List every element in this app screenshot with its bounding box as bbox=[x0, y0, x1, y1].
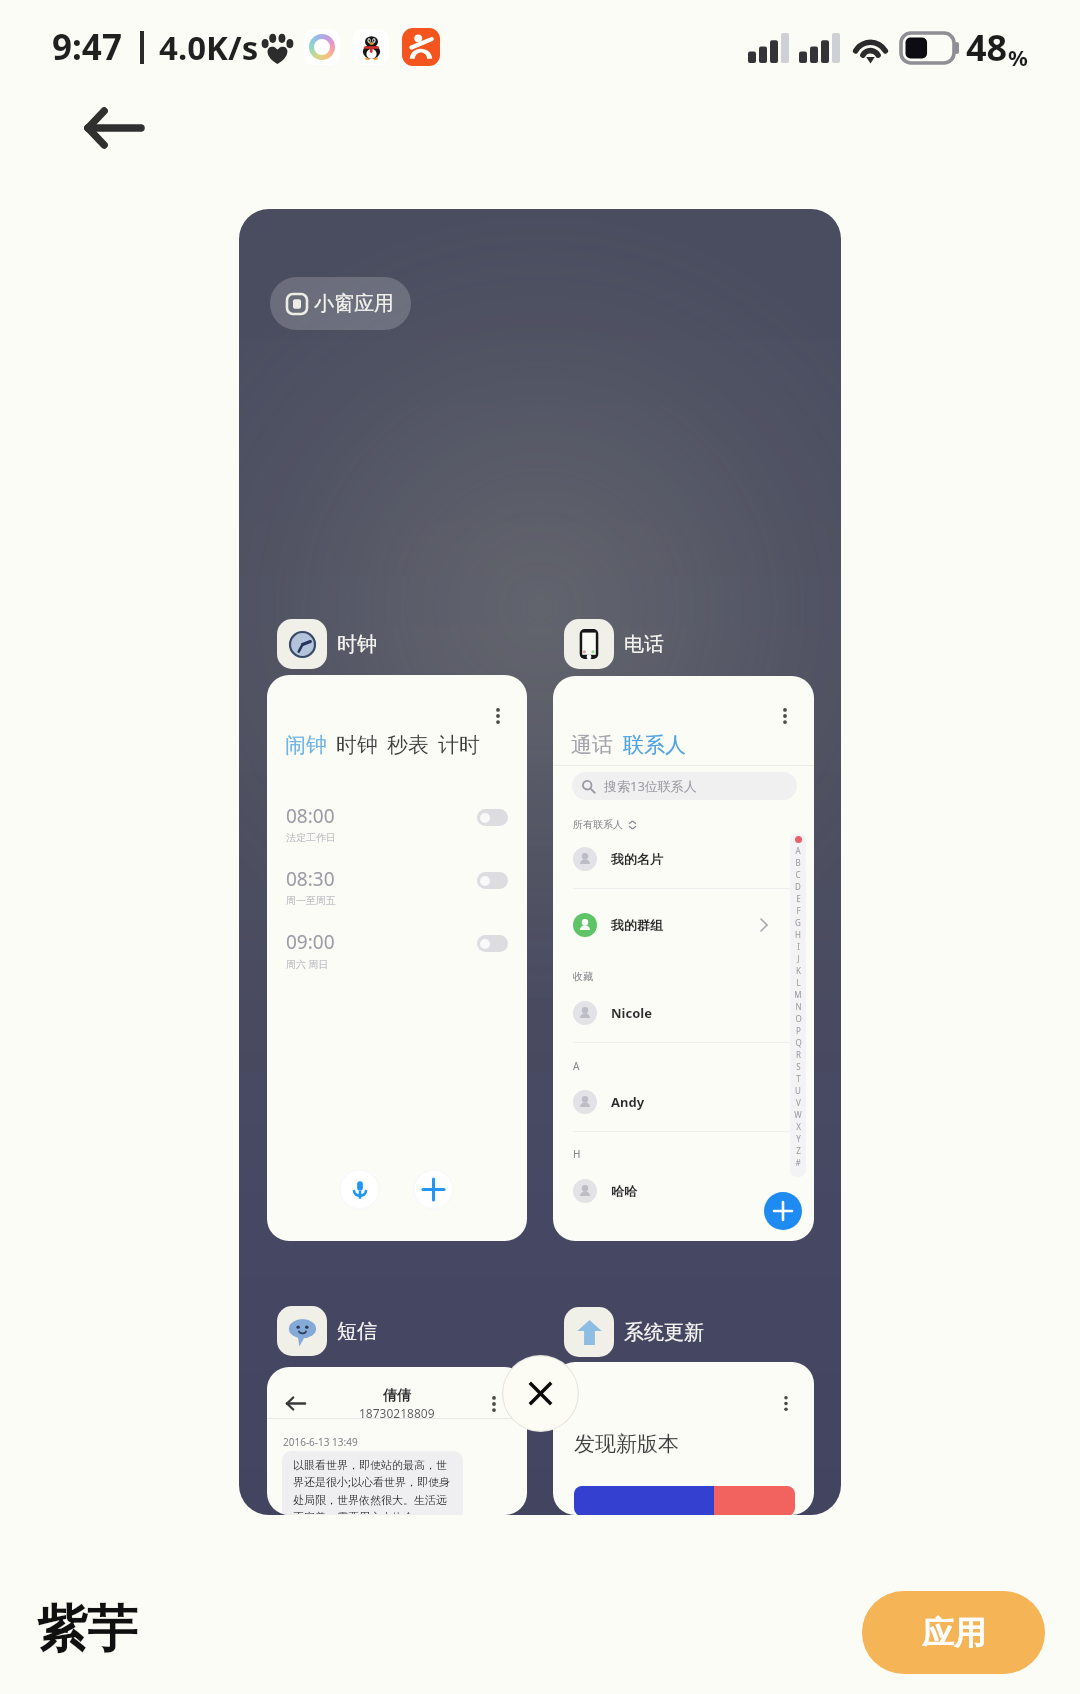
staticText: 以眼看世界，即使站的最高，世界还是很小;以心看世界，即使身处局限，世界依然很大。… bbox=[293, 1458, 452, 1514]
staticText: 电话 bbox=[624, 632, 664, 657]
staticText: J bbox=[797, 953, 800, 965]
button[interactable] bbox=[477, 935, 508, 952]
staticText: Nicole bbox=[611, 1004, 652, 1022]
staticText: 秒表 bbox=[387, 732, 429, 758]
staticText: A bbox=[573, 1059, 580, 1073]
staticText: 所有联系人 bbox=[573, 818, 623, 831]
staticText: 哈哈 bbox=[611, 1183, 637, 1199]
staticText: 小窗应用 bbox=[314, 291, 394, 316]
button[interactable] bbox=[477, 809, 508, 826]
staticText: 应用 bbox=[922, 1613, 986, 1653]
staticText: 倩倩 bbox=[383, 1387, 411, 1405]
staticText: T bbox=[796, 1073, 801, 1085]
staticText: U bbox=[795, 1085, 801, 1097]
button[interactable]: 09:00 bbox=[286, 929, 508, 979]
button[interactable]: 小窗应用 bbox=[270, 277, 411, 330]
staticText: 09:00 bbox=[286, 929, 335, 955]
staticText: 我的群组 bbox=[611, 917, 663, 933]
button[interactable]: 发现新版本 bbox=[553, 1362, 814, 1515]
button[interactable]: 电话 bbox=[564, 619, 664, 669]
staticText: 我的名片 bbox=[611, 851, 663, 867]
button[interactable]: 我的名片 bbox=[573, 846, 798, 872]
staticText: C bbox=[795, 869, 801, 881]
staticText: L bbox=[796, 977, 801, 989]
staticText: 时钟 bbox=[336, 732, 378, 758]
staticText: W bbox=[794, 1109, 802, 1121]
button[interactable]: Back bbox=[62, 76, 166, 180]
button[interactable]: 闹钟 bbox=[267, 675, 527, 1241]
button[interactable]: Add contact bbox=[764, 1192, 802, 1230]
staticText: 系统更新 bbox=[624, 1320, 704, 1345]
button[interactable]: Add alarm bbox=[413, 1169, 454, 1210]
staticText: 收藏 bbox=[573, 970, 593, 983]
staticText: 4.0K/s bbox=[159, 25, 259, 70]
staticText: 法定工作日 bbox=[286, 831, 336, 844]
staticText: N bbox=[795, 1001, 802, 1013]
button[interactable]: 08:30 bbox=[286, 866, 508, 916]
button[interactable]: 08:00 bbox=[286, 803, 508, 853]
button[interactable]: 倩倩 bbox=[267, 1367, 527, 1515]
button[interactable]: Nicole bbox=[573, 1000, 798, 1026]
button[interactable]: 通话 bbox=[553, 676, 814, 1241]
staticText: Andy bbox=[611, 1093, 645, 1111]
staticText: 发现新版本 bbox=[574, 1431, 679, 1457]
button[interactable]: Close bbox=[502, 1355, 579, 1432]
button[interactable]: Andy bbox=[573, 1089, 798, 1115]
staticText: H bbox=[795, 929, 801, 941]
button[interactable]: 哈哈 bbox=[573, 1178, 798, 1204]
staticText: 2016-6-13 13:49 bbox=[283, 1435, 358, 1449]
staticText: V bbox=[796, 1097, 801, 1109]
button[interactable]: 应用 bbox=[862, 1591, 1045, 1674]
staticText: 通话 bbox=[571, 732, 613, 758]
button[interactable]: Voice bbox=[339, 1169, 380, 1210]
staticText: 周六 周日 bbox=[286, 957, 329, 971]
button[interactable]: 我的群组 bbox=[573, 912, 798, 938]
staticText: 联系人 bbox=[623, 732, 686, 758]
staticText: 08:00 bbox=[286, 803, 335, 829]
staticText: S bbox=[796, 1061, 801, 1073]
staticText: Q bbox=[795, 1037, 802, 1049]
staticText: Y bbox=[796, 1133, 801, 1145]
staticText: # bbox=[795, 1157, 801, 1169]
staticText: 计时 bbox=[438, 732, 480, 758]
staticText: F bbox=[796, 905, 801, 917]
button[interactable]: 时钟 bbox=[277, 619, 377, 669]
staticText: P bbox=[796, 1025, 801, 1037]
staticText: 18730218809 bbox=[359, 1405, 435, 1421]
staticText: Z bbox=[796, 1145, 801, 1157]
staticText: 紫芋 bbox=[37, 1598, 137, 1661]
staticText: R bbox=[796, 1049, 801, 1061]
staticText: I bbox=[797, 941, 800, 953]
staticText: M bbox=[794, 989, 802, 1001]
staticText: 周一至周五 bbox=[286, 894, 336, 907]
button[interactable] bbox=[477, 872, 508, 889]
staticText: 短信 bbox=[337, 1319, 377, 1344]
staticText: 9:47 bbox=[52, 23, 122, 71]
staticText: G bbox=[795, 917, 801, 929]
staticText: D bbox=[795, 881, 801, 893]
staticText: O bbox=[795, 1013, 802, 1025]
staticText: H bbox=[573, 1147, 581, 1161]
button[interactable]: 系统更新 bbox=[564, 1307, 704, 1357]
staticText: A bbox=[795, 845, 801, 857]
staticText: 48 bbox=[966, 23, 1008, 72]
staticText: K bbox=[796, 965, 801, 977]
button[interactable]: 小窗应用 bbox=[239, 209, 841, 1515]
staticText: B bbox=[795, 857, 801, 869]
button[interactable]: 短信 bbox=[277, 1306, 377, 1356]
staticText: X bbox=[796, 1121, 801, 1133]
button[interactable]: 搜索13位联系人 bbox=[572, 772, 797, 800]
staticText: 08:30 bbox=[286, 866, 335, 892]
staticText: E bbox=[796, 893, 801, 905]
staticText: % bbox=[1008, 42, 1028, 72]
staticText: 搜索13位联系人 bbox=[604, 777, 697, 795]
staticText: 闹钟 bbox=[285, 732, 327, 758]
staticText: 时钟 bbox=[337, 632, 377, 657]
